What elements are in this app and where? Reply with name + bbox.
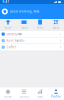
staticText: More <box>52 26 59 30</box>
staticText: Stats <box>37 95 42 98</box>
staticText: Home <box>4 95 12 98</box>
staticText: Coffee <box>6 45 16 49</box>
staticText: Profile <box>51 95 61 98</box>
staticText: Send <box>4 26 11 30</box>
staticText: Activity <box>19 95 28 98</box>
staticText: Rent Transfer <box>6 39 24 42</box>
button[interactable]: More <box>48 19 64 30</box>
button[interactable]: Coffee <box>0 44 64 50</box>
button[interactable]: Activity <box>16 87 32 100</box>
staticText: 9:41 <box>2 0 9 4</box>
staticText: Bills <box>37 26 43 30</box>
button[interactable]: Send <box>0 19 16 30</box>
button[interactable]: Rent Transfer <box>0 37 64 44</box>
staticText: Grocery Mart <box>6 32 22 36</box>
button[interactable]: Profile <box>2 8 8 14</box>
button[interactable]: Cards <box>16 19 32 30</box>
button[interactable]: Bills <box>32 19 48 30</box>
staticText: Good morning, Alex <box>10 10 39 13</box>
button[interactable]: Grocery Mart <box>0 31 64 37</box>
button[interactable]: Home <box>0 87 16 100</box>
button[interactable]: Profile <box>48 87 64 100</box>
button[interactable]: Stats <box>32 87 48 100</box>
staticText: Cards <box>20 26 27 30</box>
